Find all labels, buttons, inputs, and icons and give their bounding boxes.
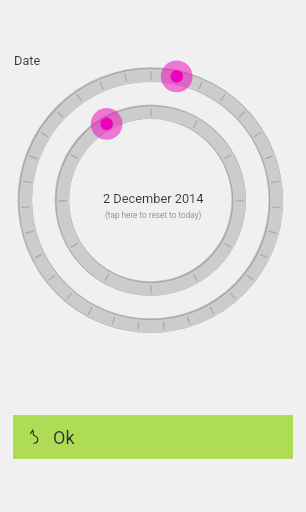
button[interactable]: Ok — [13, 415, 293, 459]
button[interactable]: Day of month: 2 — [161, 61, 193, 93]
staticText: (tap here to reset to today) — [105, 210, 202, 220]
staticText: 2 December 2014 — [103, 191, 204, 206]
staticText: Ok — [53, 427, 75, 448]
staticText: Date — [14, 53, 41, 68]
button[interactable]: Month: December — [91, 108, 123, 140]
button[interactable]: 2 December 2014 — [95, 186, 211, 222]
